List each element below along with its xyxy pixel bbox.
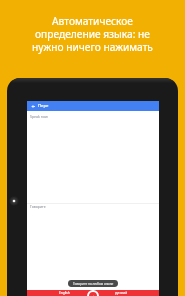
staticText: Говорите xyxy=(30,204,46,209)
staticText: Автоматическое определение языка: не нуж… xyxy=(32,14,153,54)
staticText: Пере xyxy=(38,103,49,109)
staticText: Говорите на любом языке xyxy=(73,282,114,286)
button[interactable]: Microphone xyxy=(87,290,99,296)
staticText: русский xyxy=(115,291,128,295)
staticText: English xyxy=(59,291,70,295)
staticText: Speak now xyxy=(30,114,48,119)
button[interactable]: Back xyxy=(27,101,159,111)
button[interactable]: English xyxy=(46,291,83,295)
button[interactable]: Back xyxy=(31,104,36,109)
button[interactable]: русский xyxy=(103,291,140,295)
